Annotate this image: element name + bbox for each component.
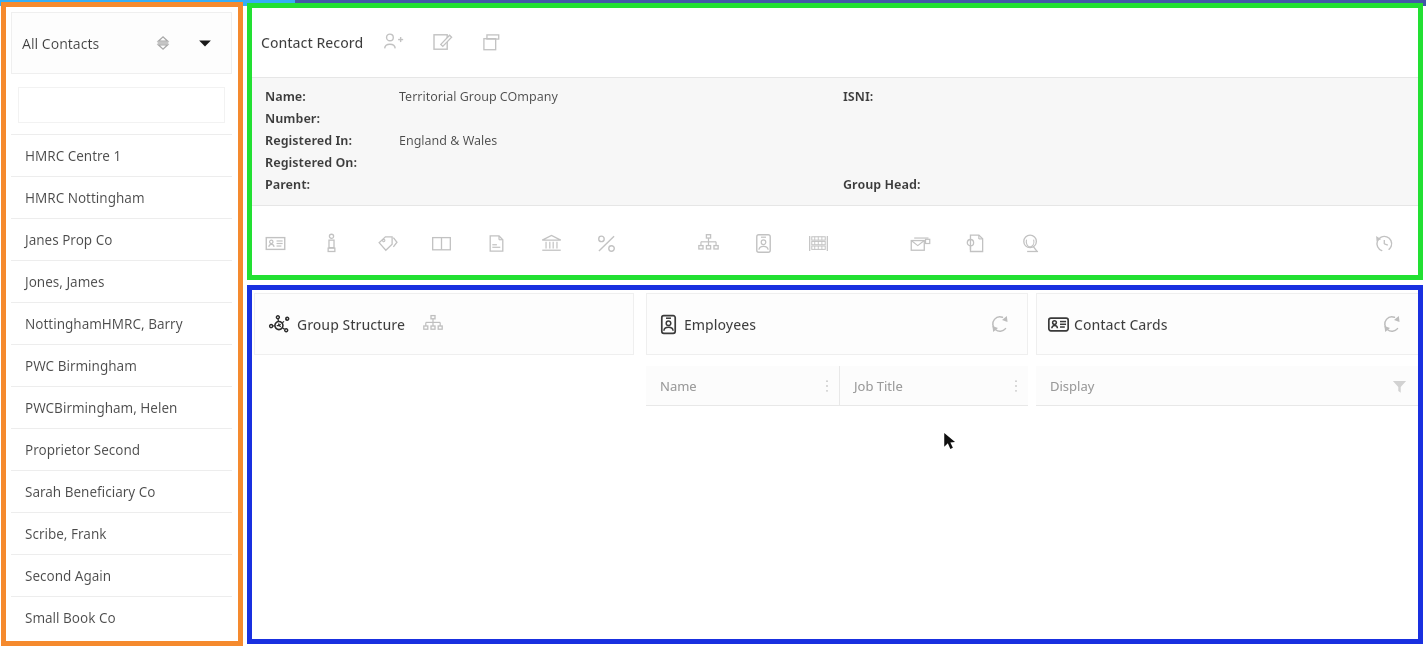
button[interactable]: Small Book Co: [0, 597, 243, 639]
button[interactable]: Jones, James: [0, 261, 243, 303]
staticText: Jones, James: [25, 273, 105, 291]
button[interactable]: Bank: [536, 228, 566, 258]
button[interactable]: Edit: [425, 25, 459, 59]
staticText: Name: [660, 377, 697, 395]
button[interactable]: PWCBirmingham, Helen: [0, 387, 243, 429]
button[interactable]: Rates: [591, 228, 621, 258]
staticText: ISNI:: [843, 88, 874, 105]
staticText: PWC Birmingham: [25, 357, 137, 375]
staticText: All Contacts: [22, 34, 100, 53]
staticText: Registered In:: [265, 132, 352, 149]
button[interactable]: NottinghamHMRC, Barry: [0, 303, 243, 345]
button[interactable]: Contact details: [260, 228, 290, 258]
button[interactable]: Job Title: [840, 366, 1028, 406]
button[interactable]: HMRC Centre 1: [0, 135, 243, 177]
button[interactable]: Org chart: [419, 310, 447, 338]
button[interactable]: Employees: [748, 228, 778, 258]
staticText: Parent:: [265, 176, 311, 193]
staticText: Employees: [684, 315, 757, 334]
button[interactable]: History: [1369, 228, 1399, 258]
button[interactable]: Refresh: [984, 308, 1016, 340]
button[interactable]: All Contacts: [11, 12, 232, 74]
staticText: Second Again: [25, 567, 112, 585]
button[interactable]: Sarah Beneficiary Co: [0, 471, 243, 513]
button[interactable]: Globe: [1015, 228, 1045, 258]
button[interactable]: Display: [1036, 366, 1420, 406]
button[interactable]: Scribe, Frank: [0, 513, 243, 555]
button[interactable]: Name: [646, 366, 839, 406]
button[interactable]: Group structure: [693, 228, 723, 258]
staticText: Display: [1050, 377, 1095, 395]
staticText: Scribe, Frank: [25, 525, 107, 543]
staticText: England & Wales: [399, 132, 498, 149]
staticText: Group Structure: [297, 315, 405, 334]
staticText: Contact Cards: [1074, 315, 1168, 334]
button[interactable]: Filter: [1386, 373, 1412, 399]
staticText: Registered On:: [265, 154, 357, 171]
staticText: PWCBirmingham, Helen: [25, 399, 178, 417]
button[interactable]: Proprietor Second: [0, 429, 243, 471]
button[interactable]: HMRC Nottingham: [0, 177, 243, 219]
button[interactable]: Contact Cards: [1036, 293, 1420, 355]
button[interactable]: Refresh: [1376, 308, 1408, 340]
staticText: Name:: [265, 88, 306, 105]
staticText: Small Book Co: [25, 609, 116, 627]
button[interactable]: Tags: [372, 228, 402, 258]
staticText: Job Title: [854, 377, 903, 395]
button[interactable]: Mail: [905, 228, 935, 258]
staticText: NottinghamHMRC, Barry: [25, 315, 183, 333]
button[interactable]: [18, 87, 225, 123]
button[interactable]: Information: [316, 228, 346, 258]
staticText: Territorial Group COmpany: [399, 88, 558, 105]
button[interactable]: Group Structure: [254, 293, 634, 355]
button[interactable]: Records grid: [803, 228, 833, 258]
staticText: Contact Record: [261, 33, 364, 52]
staticText: Janes Prop Co: [25, 231, 113, 249]
button[interactable]: Copy: [474, 25, 508, 59]
staticText: Number:: [265, 110, 320, 127]
button[interactable]: Second Again: [0, 555, 243, 597]
button[interactable]: Book: [426, 228, 456, 258]
staticText: Sarah Beneficiary Co: [25, 483, 156, 501]
button[interactable]: Add contact: [376, 25, 410, 59]
button[interactable]: Document search: [960, 228, 990, 258]
staticText: HMRC Nottingham: [25, 189, 145, 207]
button[interactable]: Employees: [646, 293, 1028, 355]
button[interactable]: PWC Birmingham: [0, 345, 243, 387]
staticText: Group Head:: [843, 176, 921, 193]
button[interactable]: Janes Prop Co: [0, 219, 243, 261]
staticText: HMRC Centre 1: [25, 147, 122, 165]
staticText: Proprietor Second: [25, 441, 141, 459]
button[interactable]: Document: [481, 228, 511, 258]
